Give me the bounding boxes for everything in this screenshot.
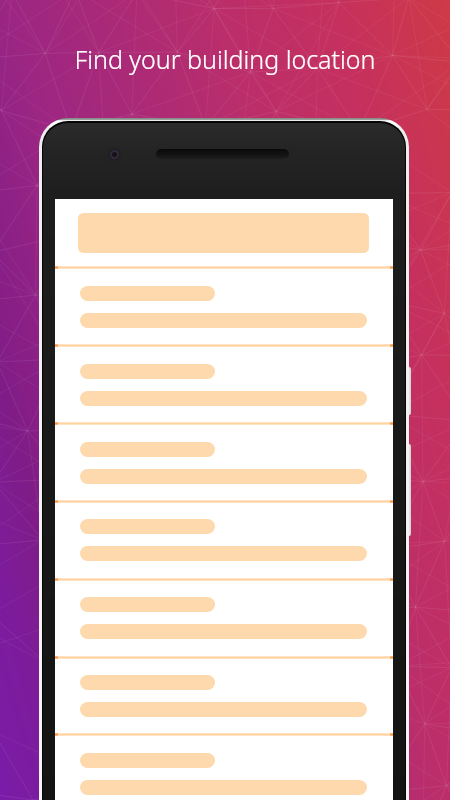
staticText: Find your building location [0, 42, 450, 76]
button[interactable] [55, 425, 393, 500]
button[interactable] [55, 580, 393, 655]
button[interactable] [55, 502, 393, 577]
button[interactable] [78, 213, 369, 253]
button[interactable] [55, 658, 393, 733]
button[interactable] [55, 269, 393, 344]
button[interactable] [55, 736, 393, 800]
button[interactable] [55, 347, 393, 422]
